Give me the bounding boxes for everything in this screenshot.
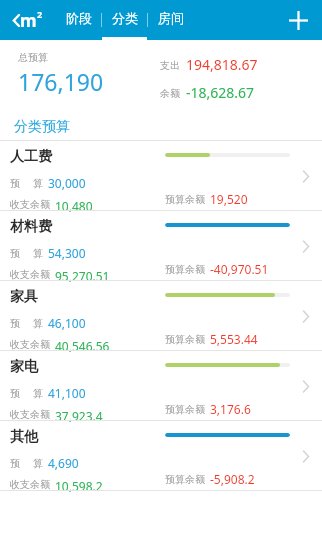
staticText: 2 <box>37 8 43 20</box>
staticText: 54,300 <box>48 245 86 261</box>
staticText: 材料费 <box>10 218 52 236</box>
button[interactable]: 房间 <box>148 0 193 40</box>
button[interactable]: Add <box>274 0 322 40</box>
staticText: 194,818.67 <box>186 55 258 74</box>
staticText: 家具 <box>10 288 38 306</box>
staticText: 其他 <box>10 428 38 446</box>
staticText: 总预算 <box>18 51 48 64</box>
staticText: 分类 <box>112 10 138 26</box>
staticText: 176,190 <box>18 66 104 97</box>
staticText: 收支余额 <box>10 338 50 351</box>
staticText: 房间 <box>158 10 184 26</box>
staticText: 算 <box>33 317 43 330</box>
button[interactable]: 材料费 <box>0 211 322 281</box>
staticText: 预算余额 <box>165 473 205 486</box>
staticText: 4,690 <box>48 455 79 471</box>
staticText: 家电 <box>10 358 38 376</box>
staticText: 46,100 <box>48 315 86 331</box>
staticText: 预算余额 <box>165 193 205 206</box>
staticText: 收支余额 <box>10 198 50 211</box>
button[interactable]: 家具 <box>0 281 322 351</box>
staticText: 预 <box>10 247 20 260</box>
staticText: 分类预算 <box>14 118 70 136</box>
staticText: 人工费 <box>10 148 52 166</box>
staticText: 收支余额 <box>10 268 50 281</box>
button[interactable]: 阶段 <box>56 0 101 40</box>
staticText: 5,553.44 <box>210 331 258 347</box>
staticText: 95,270.51 <box>55 268 110 282</box>
button[interactable]: 其他 <box>0 421 322 491</box>
staticText: 算 <box>33 177 43 190</box>
staticText: 10,480 <box>55 198 93 212</box>
staticText: 预 <box>10 177 20 190</box>
staticText: 预算余额 <box>165 263 205 276</box>
staticText: -40,970.51 <box>210 261 269 277</box>
staticText: 预 <box>10 317 20 330</box>
staticText: 预 <box>10 457 20 470</box>
staticText: 37,923.4 <box>55 408 103 422</box>
staticText: -18,628.67 <box>186 83 255 102</box>
staticText: 收支余额 <box>10 478 50 491</box>
staticText: 预算余额 <box>165 333 205 346</box>
staticText: -5,908.2 <box>210 471 255 487</box>
staticText: 算 <box>33 387 43 400</box>
button[interactable]: Back <box>0 0 56 40</box>
staticText: 41,100 <box>48 385 86 401</box>
button[interactable]: 人工费 <box>0 141 322 211</box>
staticText: 余额 <box>160 87 180 100</box>
staticText: 算 <box>33 247 43 260</box>
staticText: 预算余额 <box>165 403 205 416</box>
staticText: 30,000 <box>48 175 86 191</box>
staticText: 收支余额 <box>10 408 50 421</box>
button[interactable]: 家电 <box>0 351 322 421</box>
staticText: 支出 <box>160 59 180 72</box>
staticText: 预 <box>10 387 20 400</box>
staticText: m <box>20 9 37 32</box>
button[interactable]: 分类 <box>102 0 147 40</box>
staticText: 3,176.6 <box>210 401 251 417</box>
staticText: 算 <box>33 457 43 470</box>
staticText: 阶段 <box>66 10 92 26</box>
staticText: 10,598.2 <box>55 478 103 492</box>
staticText: 19,520 <box>210 191 248 207</box>
staticText: 40,546.56 <box>55 338 110 352</box>
